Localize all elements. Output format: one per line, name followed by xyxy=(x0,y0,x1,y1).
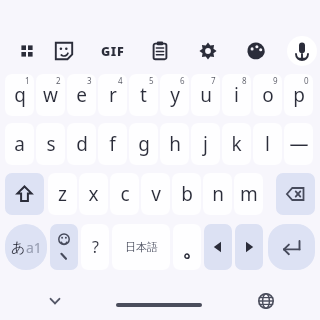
staticText: t xyxy=(140,82,147,108)
staticText: ? xyxy=(92,236,99,258)
button[interactable]: Voice input xyxy=(287,36,317,66)
staticText: a xyxy=(14,131,25,157)
other: Emoji xyxy=(50,224,78,270)
button[interactable]: a xyxy=(5,123,34,165)
staticText: — xyxy=(289,131,309,157)
button[interactable]: c xyxy=(110,173,139,215)
button[interactable]: b xyxy=(172,173,201,215)
staticText: n xyxy=(212,181,224,207)
button[interactable]: Cursor left xyxy=(204,224,232,270)
staticText: GIF xyxy=(101,43,125,60)
button[interactable]: l xyxy=(253,123,282,165)
button[interactable]: 日本語 xyxy=(112,224,170,270)
staticText: e xyxy=(76,82,87,108)
staticText: r xyxy=(109,82,117,108)
staticText: h xyxy=(169,131,181,157)
staticText: a1 xyxy=(26,238,42,257)
button[interactable]: m xyxy=(234,173,263,215)
button[interactable]: Cursor right xyxy=(235,224,263,270)
button[interactable]: — xyxy=(284,123,313,165)
staticText: l xyxy=(265,131,270,157)
staticText: i xyxy=(234,82,239,108)
button[interactable]: Settings xyxy=(194,37,222,65)
button[interactable]: ? xyxy=(81,224,109,270)
button[interactable]: Enter xyxy=(268,224,315,270)
button[interactable] xyxy=(173,224,201,270)
staticText: g xyxy=(138,131,150,157)
button[interactable]: Shift xyxy=(5,173,44,215)
staticText: 7 xyxy=(211,75,216,86)
staticText: 1 xyxy=(25,75,30,86)
button[interactable]: Symbols xyxy=(13,37,41,65)
button[interactable]: x xyxy=(79,173,108,215)
button[interactable]: q xyxy=(5,74,34,116)
staticText: x xyxy=(88,181,99,207)
staticText: 2 xyxy=(56,75,61,86)
other: Cursor right xyxy=(235,224,263,270)
staticText: d xyxy=(76,131,88,157)
button[interactable]: f xyxy=(98,123,127,165)
button[interactable]: Backspace xyxy=(276,173,315,215)
staticText: v xyxy=(151,181,161,207)
button[interactable]: h xyxy=(160,123,189,165)
button[interactable]: Change language xyxy=(252,287,280,315)
staticText: w xyxy=(43,82,58,108)
other: Backspace xyxy=(276,173,315,215)
button[interactable]: v xyxy=(141,173,170,215)
staticText: 0 xyxy=(304,75,309,86)
other: Cursor left xyxy=(204,224,232,270)
staticText: q xyxy=(14,82,26,108)
button[interactable]: t xyxy=(129,74,158,116)
staticText: o xyxy=(262,82,274,108)
button[interactable]: Emoji xyxy=(50,224,78,270)
staticText: y xyxy=(170,82,180,108)
button[interactable]: あ xyxy=(5,224,47,270)
staticText: p xyxy=(293,82,305,108)
staticText: b xyxy=(181,181,193,207)
staticText: あ xyxy=(11,239,26,257)
staticText: j xyxy=(203,131,208,157)
button[interactable]: Clipboard xyxy=(146,37,174,65)
button[interactable]: k xyxy=(222,123,251,165)
button[interactable]: p xyxy=(284,74,313,116)
staticText: 9 xyxy=(273,75,278,86)
button[interactable]: z xyxy=(48,173,77,215)
button[interactable]: j xyxy=(191,123,220,165)
staticText: c xyxy=(120,181,130,207)
button[interactable]: d xyxy=(67,123,96,165)
button[interactable]: Themes xyxy=(242,37,270,65)
button[interactable]: r xyxy=(98,74,127,116)
staticText: u xyxy=(200,82,212,108)
staticText: k xyxy=(231,131,242,157)
button[interactable]: n xyxy=(203,173,232,215)
staticText: 日本語 xyxy=(125,240,158,254)
button[interactable]: e xyxy=(67,74,96,116)
staticText: 5 xyxy=(149,75,154,86)
other: Shift xyxy=(5,173,44,215)
button[interactable]: g xyxy=(129,123,158,165)
staticText: 6 xyxy=(180,75,185,86)
button[interactable]: u xyxy=(191,74,220,116)
button[interactable]: y xyxy=(160,74,189,116)
staticText: 4 xyxy=(118,75,123,86)
staticText: f xyxy=(109,131,116,157)
button[interactable]: GIF xyxy=(95,41,131,61)
staticText: 8 xyxy=(242,75,247,86)
button[interactable]: i xyxy=(222,74,251,116)
staticText: s xyxy=(46,131,56,157)
button[interactable]: w xyxy=(36,74,65,116)
button[interactable]: Stickers xyxy=(50,37,78,65)
staticText: m xyxy=(240,181,258,207)
staticText: 3 xyxy=(87,75,92,86)
button[interactable]: Hide keyboard xyxy=(41,287,69,315)
button[interactable]: s xyxy=(36,123,65,165)
button[interactable]: o xyxy=(253,74,282,116)
staticText: z xyxy=(58,181,67,207)
